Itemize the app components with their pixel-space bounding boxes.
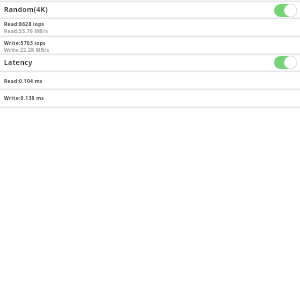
- button[interactable]: Toggle switch, on: [274, 56, 297, 69]
- staticText: Read:33.70 MB/s: [4, 28, 48, 35]
- staticText: Random(4K): [4, 5, 48, 15]
- staticText: Write:22.28 MB/s: [4, 47, 50, 54]
- button[interactable]: Write:0.138 ms: [0, 89, 300, 107]
- button[interactable]: Read:0.104 ms: [0, 72, 300, 90]
- staticText: Read:0.104 ms: [4, 78, 43, 85]
- staticText: Write:0.138 ms: [4, 95, 45, 102]
- staticText: Read:8628 iops: [4, 21, 45, 28]
- button[interactable]: Latency: [0, 54, 300, 71]
- staticText: Latency: [4, 58, 33, 68]
- staticText: Write:5703 iops: [4, 40, 46, 47]
- button[interactable]: Toggle switch, on: [274, 4, 297, 17]
- button[interactable]: Random(4K): [0, 1, 300, 19]
- button[interactable]: Read:8628 iops: [0, 18, 300, 36]
- button[interactable]: Write:5703 iops: [0, 37, 300, 55]
